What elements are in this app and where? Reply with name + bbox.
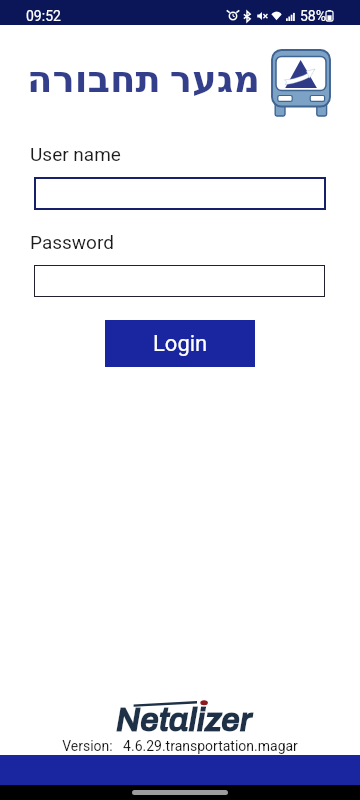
staticText: 58% (300, 8, 326, 24)
staticText: מגער תחבורה (27, 58, 261, 101)
button[interactable]: Login (105, 320, 255, 367)
button[interactable] (34, 177, 326, 210)
staticText: Netalizer (116, 702, 252, 738)
staticText: 09:52 (26, 8, 61, 24)
button[interactable] (34, 265, 325, 297)
staticText: Login (153, 331, 208, 357)
staticText: User name (30, 143, 121, 165)
other: App logo (272, 50, 330, 116)
staticText: Version: 4.6.29.transportation.magar (62, 738, 298, 754)
staticText: Password (30, 231, 114, 253)
